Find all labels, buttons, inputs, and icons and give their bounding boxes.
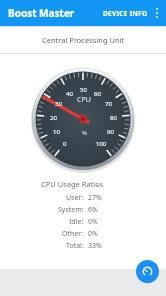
staticText: 90 [107,128,114,136]
staticText: % [82,129,87,137]
staticText: 40 [66,90,73,98]
staticText: 33% [88,241,102,251]
staticText: Central Processing Unit [42,35,125,45]
staticText: 10 [53,128,60,136]
staticText: Idle: [69,217,84,227]
staticText: 100 [96,140,107,148]
staticText: Other: [62,229,84,239]
button[interactable] [136,260,159,283]
staticText: DEVICE INFO [103,9,148,18]
staticText: 0% [88,217,98,227]
staticText: 30 [55,100,62,108]
staticText: 50 [80,86,87,94]
staticText: 6% [88,205,98,215]
button[interactable] [151,3,163,23]
staticText: System: [58,205,84,215]
staticText: User: [66,193,84,203]
button[interactable]: Central Processing Unit [0,26,166,53]
staticText: 70 [105,100,112,108]
staticText: 0 [63,140,67,148]
button[interactable]: DEVICE INFO [100,6,151,21]
staticText: Boost Master [8,6,75,20]
staticText: 0% [88,229,98,239]
staticText: CPU Usage Ratios [41,179,104,189]
staticText: 80 [110,114,117,122]
staticText: 27% [88,193,102,203]
staticText: 20 [50,114,57,122]
staticText: 60 [94,90,101,98]
staticText: CPU [77,95,91,105]
staticText: Total: [66,241,84,251]
